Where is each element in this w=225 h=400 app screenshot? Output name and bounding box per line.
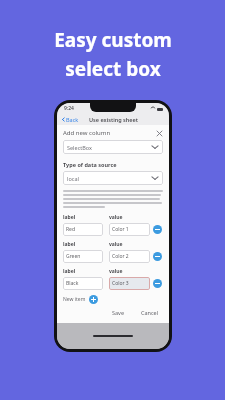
button[interactable]: Add new item — [89, 295, 98, 304]
staticText: 9:24 — [64, 105, 74, 112]
button[interactable]: Black — [63, 277, 103, 290]
button[interactable]: Color 2 — [109, 250, 150, 263]
staticText: Easy custom — [54, 27, 172, 53]
staticText: local — [67, 175, 151, 182]
button[interactable]: Save — [108, 307, 129, 318]
button[interactable]: Color 1 — [109, 223, 150, 236]
staticText: Color 2 — [112, 253, 129, 260]
button[interactable]: SelectBox — [63, 140, 163, 154]
button[interactable]: New item — [63, 295, 98, 304]
staticText: Color 3 — [112, 280, 129, 287]
button[interactable]: local — [63, 171, 163, 185]
staticText: value — [109, 268, 150, 275]
button[interactable]: Close — [155, 129, 163, 137]
staticText: Add new column — [63, 129, 155, 137]
staticText: Color 1 — [112, 226, 129, 233]
staticText: label — [63, 241, 103, 248]
button[interactable]: Remove item — [153, 252, 162, 261]
staticText: Red — [66, 226, 76, 233]
button[interactable]: Red — [63, 223, 103, 236]
staticText: Type of data source — [63, 161, 117, 168]
staticText: label — [63, 214, 103, 221]
button[interactable]: Color 3 — [109, 277, 150, 290]
staticText: Cancel — [141, 309, 159, 316]
staticText: Green — [66, 253, 81, 260]
staticText: label — [63, 268, 103, 275]
staticText: Save — [112, 309, 125, 316]
staticText: SelectBox — [67, 144, 151, 151]
button[interactable]: Remove item — [153, 225, 162, 234]
staticText: New item — [63, 296, 86, 303]
staticText: value — [109, 241, 150, 248]
staticText: Back — [66, 116, 79, 123]
staticText: select box — [65, 56, 161, 82]
staticText: Use existing sheet — [89, 116, 138, 123]
button[interactable]: Remove item — [153, 279, 162, 288]
staticText: Black — [66, 280, 79, 287]
button[interactable]: Cancel — [137, 307, 163, 318]
button[interactable]: Back — [61, 116, 79, 123]
staticText: value — [109, 214, 150, 221]
button[interactable]: Green — [63, 250, 103, 263]
